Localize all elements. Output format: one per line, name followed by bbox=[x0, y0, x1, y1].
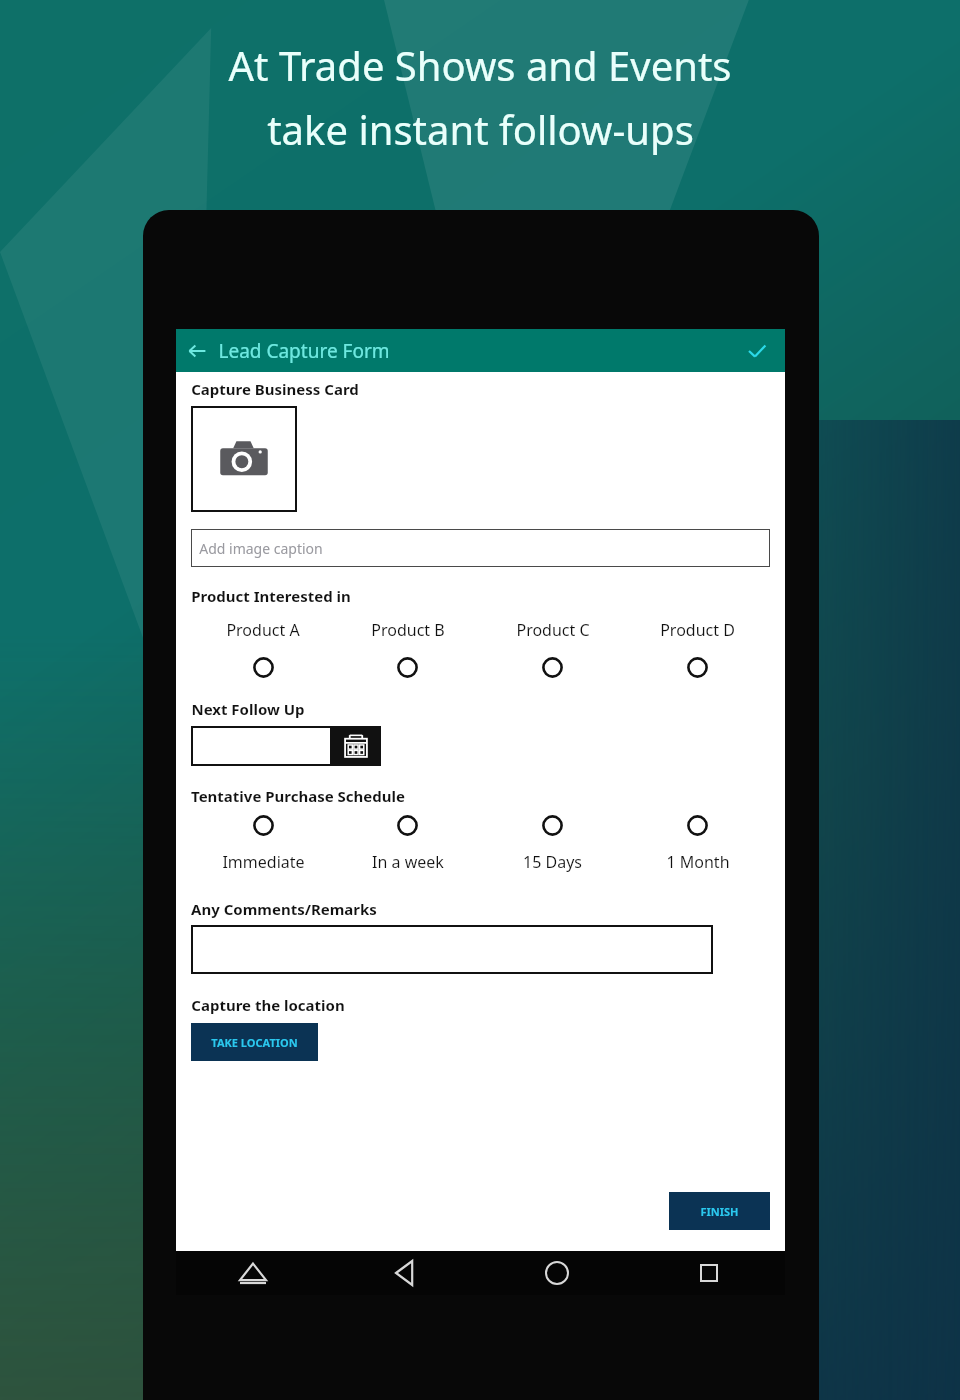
staticText: Product D bbox=[660, 619, 735, 641]
button[interactable]: Overview bbox=[633, 1251, 785, 1295]
staticText: Product B bbox=[371, 619, 445, 641]
staticText: Any Comments/Remarks bbox=[191, 899, 377, 919]
button[interactable]: Product B bbox=[335, 619, 480, 678]
staticText: Add image caption bbox=[199, 539, 323, 558]
staticText: Lead Capture Form bbox=[218, 338, 390, 364]
staticText: Capture Business Card bbox=[191, 379, 359, 399]
button[interactable]: FINISH bbox=[669, 1192, 770, 1230]
staticText: At Trade Shows and Events bbox=[228, 38, 732, 92]
button[interactable]: 15 Days bbox=[480, 815, 625, 873]
staticText: 15 Days bbox=[523, 851, 582, 873]
button[interactable]: Pick follow up date bbox=[191, 726, 381, 766]
button[interactable]: Product C bbox=[480, 619, 625, 678]
staticText: TAKE LOCATION bbox=[211, 1035, 298, 1050]
button[interactable]: Save bbox=[729, 329, 785, 372]
button[interactable]: Capture business card photo bbox=[191, 406, 297, 512]
staticText: Product C bbox=[516, 619, 590, 641]
staticText: Capture the location bbox=[191, 995, 345, 1015]
button[interactable]: Recents circle bbox=[481, 1251, 633, 1295]
staticText: FINISH bbox=[700, 1204, 739, 1219]
button[interactable]: In a week bbox=[335, 815, 480, 873]
button[interactable]: Immediate bbox=[191, 815, 335, 873]
button[interactable]: Back bbox=[329, 1251, 481, 1295]
staticText: Next Follow Up bbox=[191, 699, 305, 719]
button[interactable]: Back bbox=[176, 329, 218, 372]
staticText: 1 Month bbox=[666, 851, 730, 873]
button[interactable]: 1 Month bbox=[625, 815, 770, 873]
staticText: Product Interested in bbox=[191, 586, 351, 606]
button[interactable]: Product D bbox=[625, 619, 770, 678]
button[interactable]: Product A bbox=[191, 619, 335, 678]
staticText: In a week bbox=[372, 851, 444, 873]
button[interactable]: Add image caption bbox=[191, 529, 770, 567]
staticText: Tentative Purchase Schedule bbox=[191, 786, 405, 806]
button[interactable]: Lead Capture Form bbox=[218, 329, 729, 372]
button[interactable]: Comments field bbox=[191, 925, 713, 974]
staticText: Product A bbox=[226, 619, 300, 641]
button[interactable]: Home bbox=[176, 1251, 329, 1295]
staticText: take instant follow-ups bbox=[267, 102, 694, 156]
button[interactable]: TAKE LOCATION bbox=[191, 1023, 318, 1061]
staticText: Immediate bbox=[222, 851, 305, 873]
